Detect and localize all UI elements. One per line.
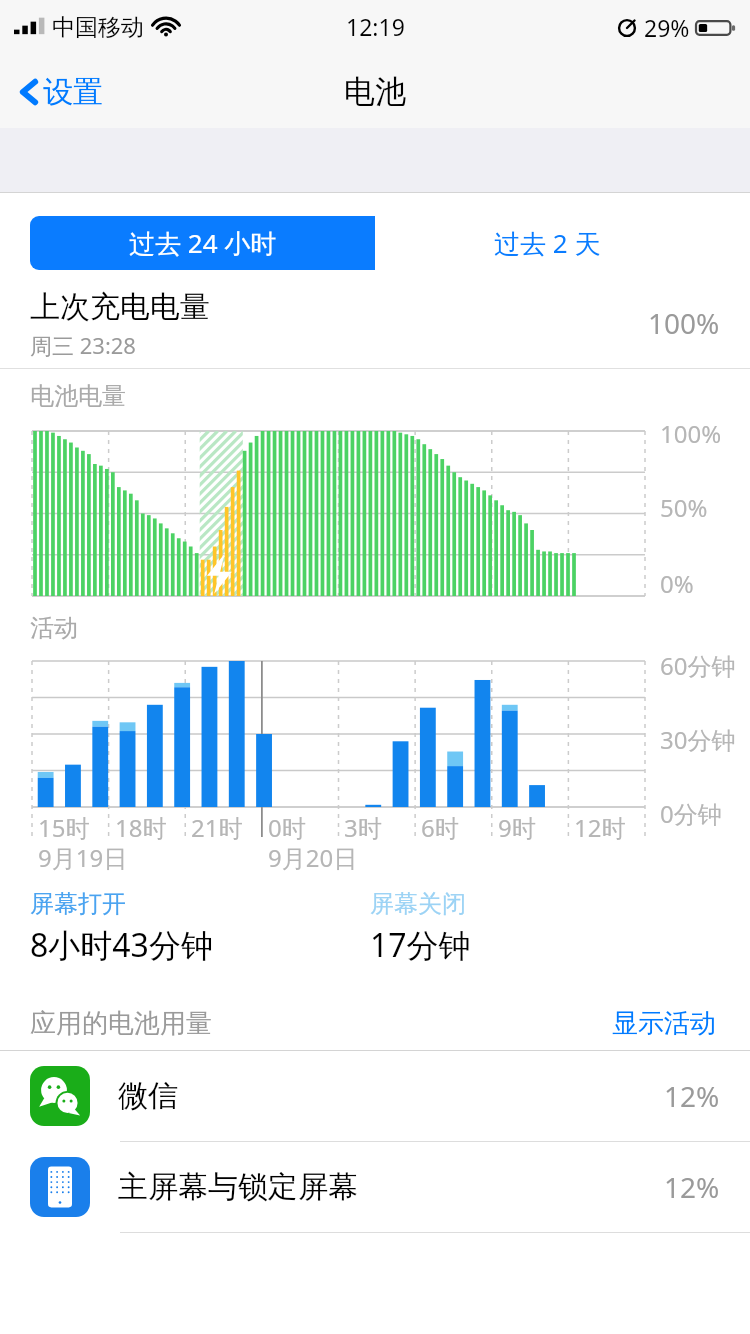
staticText: 应用的电池用量	[30, 1007, 608, 1040]
staticText: 设置	[43, 73, 103, 111]
staticText: 6时	[421, 811, 459, 844]
staticText: 9月19日	[38, 841, 128, 874]
staticText: 屏幕打开	[30, 889, 126, 919]
staticText: 3时	[344, 811, 382, 844]
staticText: 12:19	[346, 11, 405, 42]
button[interactable]: 微信	[0, 1051, 750, 1141]
staticText: 显示活动	[612, 1007, 716, 1040]
staticText: 100%	[648, 304, 720, 342]
staticText: 100%	[660, 417, 722, 450]
staticText: 微信	[118, 1077, 664, 1115]
staticText: 15时	[38, 811, 90, 844]
staticText: 29%	[644, 12, 690, 43]
staticText: 30分钟	[660, 723, 736, 756]
staticText: 50%	[660, 491, 708, 524]
staticText: 周三 23:28	[30, 330, 136, 360]
button[interactable]: 显示活动	[608, 1003, 720, 1044]
staticText: 17分钟	[370, 923, 471, 967]
staticText: 9月20日	[268, 841, 358, 874]
staticText: 12时	[574, 811, 626, 844]
staticText: 21时	[191, 811, 243, 844]
staticText: 电池电量	[30, 381, 126, 411]
staticText: 主屏幕与锁定屏幕	[118, 1168, 664, 1206]
staticText: 12%	[664, 1077, 720, 1115]
staticText: 18时	[115, 811, 167, 844]
staticText: 0分钟	[660, 797, 722, 830]
staticText: 电池	[344, 72, 406, 111]
staticText: 0时	[268, 811, 306, 844]
button[interactable]: 过去 24 小时	[30, 216, 375, 270]
staticText: 过去 2 天	[494, 225, 601, 261]
staticText: 9时	[498, 811, 536, 844]
staticText: 上次充电电量	[30, 288, 210, 326]
staticText: 60分钟	[660, 649, 736, 682]
staticText: 活动	[30, 613, 78, 643]
staticText: 12%	[664, 1168, 720, 1206]
button[interactable]: 过去 2 天	[375, 216, 720, 270]
staticText: 屏幕关闭	[370, 889, 466, 919]
staticText: 0%	[660, 567, 694, 600]
staticText: 8小时43分钟	[30, 923, 213, 967]
staticText: 中国移动	[52, 13, 144, 42]
button[interactable]: 设置	[14, 67, 107, 117]
staticText: 过去 24 小时	[129, 225, 277, 261]
button[interactable]: 主屏幕与锁定屏幕	[0, 1142, 750, 1232]
